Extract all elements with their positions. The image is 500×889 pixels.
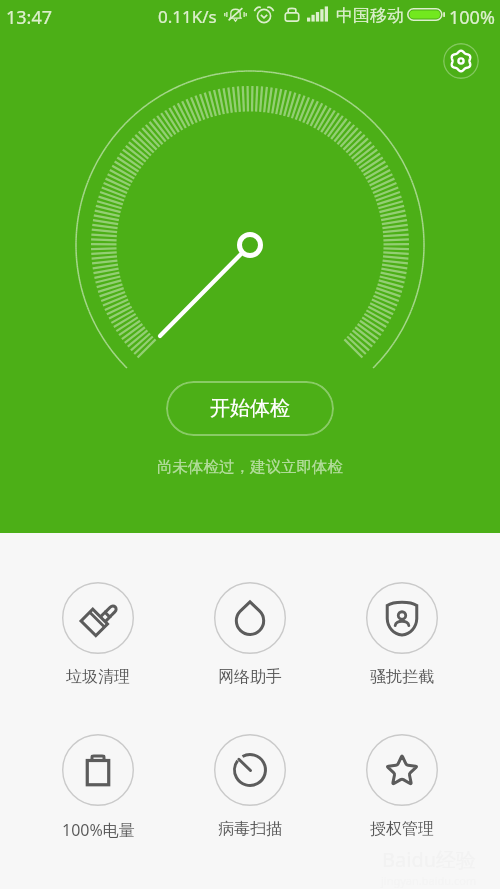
staticText: 尚未体检过，建议立即体检 <box>0 457 500 477</box>
staticText: 100%电量 <box>62 819 135 841</box>
button[interactable]: 授权管理 <box>348 734 456 839</box>
button[interactable]: 网络助手 <box>196 582 304 687</box>
button[interactable]: Settings <box>443 43 479 79</box>
staticText: 中国移动 <box>336 5 404 26</box>
button[interactable]: 病毒扫描 <box>196 734 304 839</box>
staticText: 0.11K/s <box>158 5 217 28</box>
staticText: 开始体检 <box>210 396 290 421</box>
staticText: 授权管理 <box>370 819 434 839</box>
button[interactable]: 骚扰拦截 <box>348 582 456 687</box>
button[interactable]: 100%电量 <box>44 734 152 841</box>
staticText: 病毒扫描 <box>218 819 282 839</box>
button[interactable]: 垃圾清理 <box>44 582 152 687</box>
button[interactable]: 开始体检 <box>166 381 334 436</box>
staticText: 垃圾清理 <box>66 667 130 687</box>
staticText: 骚扰拦截 <box>370 667 434 687</box>
staticText: 13:47 <box>6 5 53 30</box>
staticText: 网络助手 <box>218 667 282 687</box>
staticText: 100% <box>449 5 495 30</box>
